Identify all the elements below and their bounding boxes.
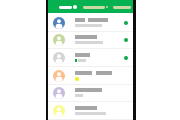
button[interactable] bbox=[48, 31, 133, 49]
button[interactable]: App bar bbox=[48, 0, 133, 13]
button[interactable] bbox=[48, 67, 133, 85]
button[interactable] bbox=[48, 14, 133, 32]
button[interactable] bbox=[48, 102, 133, 120]
button[interactable] bbox=[48, 49, 133, 67]
button[interactable] bbox=[48, 84, 133, 102]
